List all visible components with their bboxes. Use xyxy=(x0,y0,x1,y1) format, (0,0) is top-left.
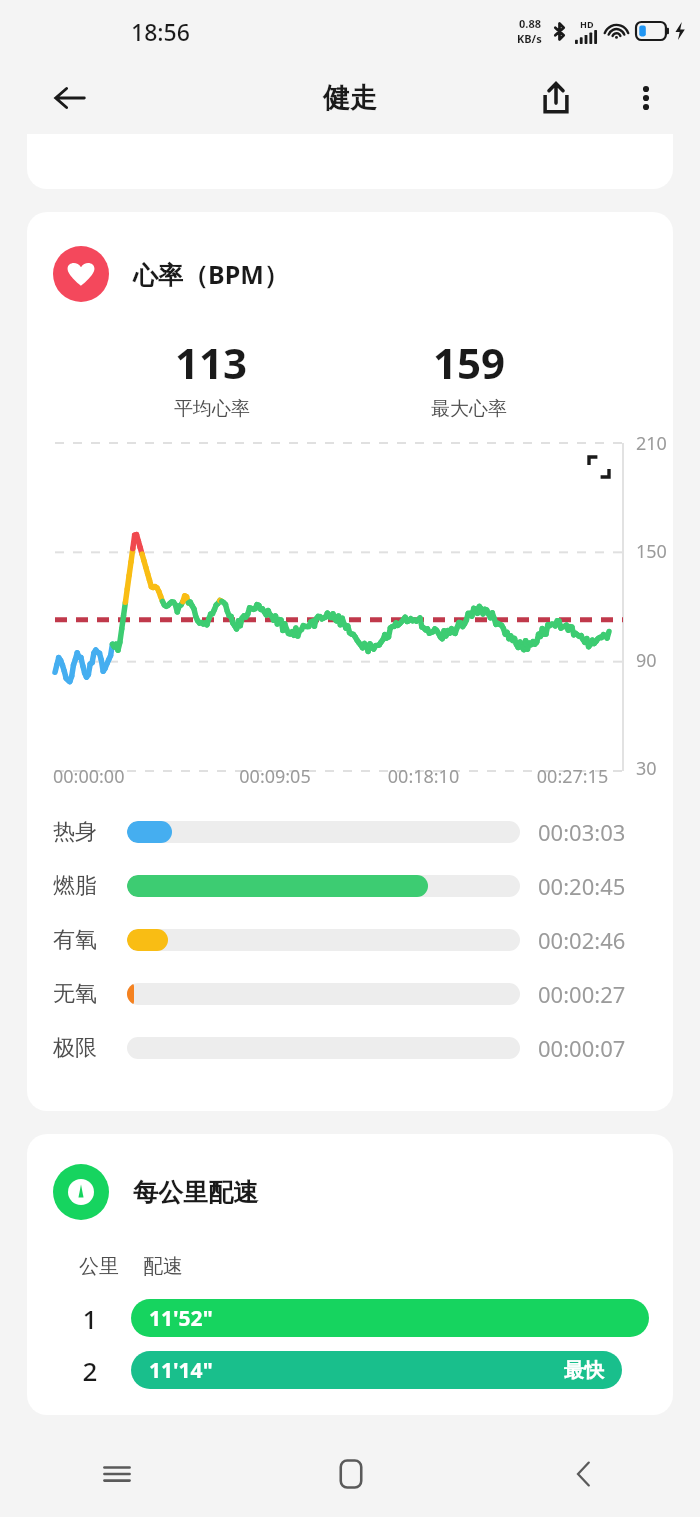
staticText: 00:02:46 xyxy=(538,925,626,955)
staticText: 159 xyxy=(433,334,506,391)
staticText: 配速 xyxy=(143,1254,183,1279)
staticText: 燃脂 xyxy=(53,872,127,900)
staticText: 0.88 xyxy=(519,16,541,31)
button[interactable]: 心率（BPM） xyxy=(27,212,673,1111)
button[interactable]: 热身 xyxy=(27,805,673,859)
staticText: 18:56 xyxy=(131,16,190,47)
staticText: 热身 xyxy=(53,818,127,846)
staticText: 1 xyxy=(67,1301,113,1336)
button[interactable]: 极限 xyxy=(27,1021,673,1075)
button[interactable]: Back xyxy=(467,1431,700,1517)
staticText: 公里 xyxy=(79,1254,119,1279)
staticText: 无氧 xyxy=(53,980,127,1008)
staticText: 00:20:45 xyxy=(538,871,626,901)
staticText: HD xyxy=(580,18,594,30)
staticText: 00:09:05 xyxy=(201,764,349,789)
staticText: 30 xyxy=(636,756,657,781)
button[interactable]: 燃脂 xyxy=(27,859,673,913)
button[interactable]: 1 xyxy=(27,1299,673,1337)
staticText: 00:27:15 xyxy=(498,764,647,789)
staticText: 健走 xyxy=(323,81,377,115)
staticText: 90 xyxy=(636,648,657,673)
staticText: 00:00:00 xyxy=(53,764,201,789)
button[interactable]: Home xyxy=(234,1431,467,1517)
staticText: 113 xyxy=(175,334,248,391)
button[interactable]: 有氧 xyxy=(27,913,673,967)
staticText: 每公里配速 xyxy=(133,1177,258,1208)
staticText: 00:18:10 xyxy=(349,764,498,789)
staticText: 平均心率 xyxy=(174,397,250,421)
button[interactable]: Fullscreen chart xyxy=(577,445,621,489)
staticText: 00:00:27 xyxy=(538,979,626,1009)
staticText: 11'14" xyxy=(149,1356,213,1385)
button[interactable]: Back xyxy=(48,76,92,120)
staticText: 150 xyxy=(636,539,667,564)
staticText: 极限 xyxy=(53,1034,127,1062)
staticText: 心率（BPM） xyxy=(133,257,289,291)
staticText: 00:03:03 xyxy=(538,817,626,847)
staticText: 有氧 xyxy=(53,926,127,954)
staticText: 最快 xyxy=(564,1358,604,1383)
button[interactable]: Share xyxy=(530,72,582,124)
staticText: 最大心率 xyxy=(431,397,507,421)
staticText: 210 xyxy=(636,431,667,456)
button[interactable]: More options xyxy=(620,72,672,124)
staticText: 00:00:07 xyxy=(538,1033,626,1063)
staticText: 11'52" xyxy=(149,1304,213,1333)
button[interactable]: 无氧 xyxy=(27,967,673,1021)
button[interactable]: Recent apps xyxy=(0,1431,234,1517)
button[interactable]: 每公里配速 xyxy=(27,1134,673,1415)
staticText: KB/s xyxy=(517,31,542,46)
staticText: 2 xyxy=(67,1353,113,1388)
button[interactable]: 2 xyxy=(27,1351,673,1389)
